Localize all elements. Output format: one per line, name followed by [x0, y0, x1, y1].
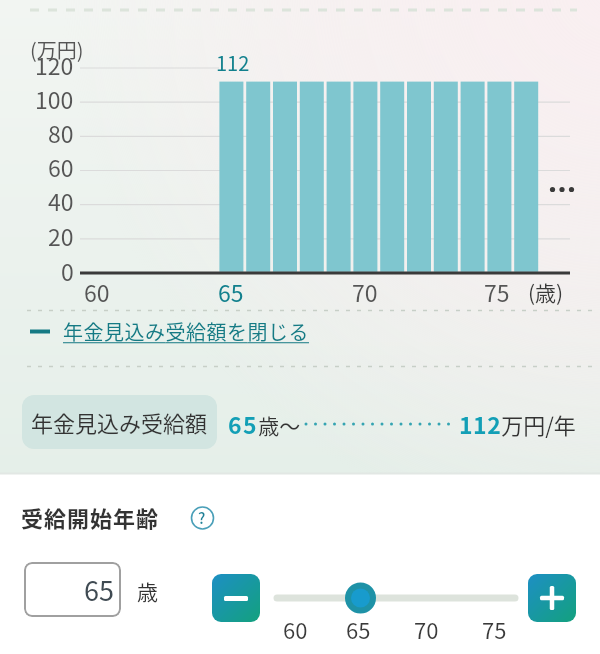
staticText: 65: [346, 613, 371, 645]
button[interactable]: 65: [24, 562, 121, 617]
staticText: 40: [48, 184, 74, 217]
staticText: 70: [414, 613, 439, 645]
staticText: 75: [484, 275, 510, 308]
staticText: 歳: [137, 576, 158, 606]
staticText: 75: [482, 613, 507, 645]
button[interactable]: [528, 574, 576, 622]
staticText: 65: [218, 275, 244, 308]
staticText: (歳): [528, 277, 564, 307]
button[interactable]: [345, 582, 377, 614]
staticText: 100: [35, 82, 74, 115]
staticText: 60: [283, 613, 308, 645]
staticText: 70: [352, 275, 378, 308]
staticText: 112万円/年: [459, 407, 576, 440]
staticText: (万円): [30, 35, 84, 64]
button[interactable]: [212, 574, 260, 622]
staticText: 60: [48, 150, 74, 183]
staticText: 120: [35, 48, 74, 81]
staticText: 80: [48, 116, 74, 149]
staticText: 受給開始年齢: [21, 501, 160, 533]
staticText: ?: [198, 507, 206, 529]
button[interactable]: [191, 506, 215, 530]
staticText: 年金見込み受給額を閉じる: [63, 317, 309, 346]
staticText: 20: [48, 219, 74, 252]
staticText: 65歳〜: [228, 407, 301, 440]
staticText: 60: [84, 275, 110, 308]
button[interactable]: [24, 317, 324, 345]
staticText: 0: [61, 254, 74, 287]
staticText: 65: [84, 570, 114, 609]
staticText: 年金見込み受給額: [31, 406, 208, 438]
staticText: 112: [216, 48, 250, 77]
